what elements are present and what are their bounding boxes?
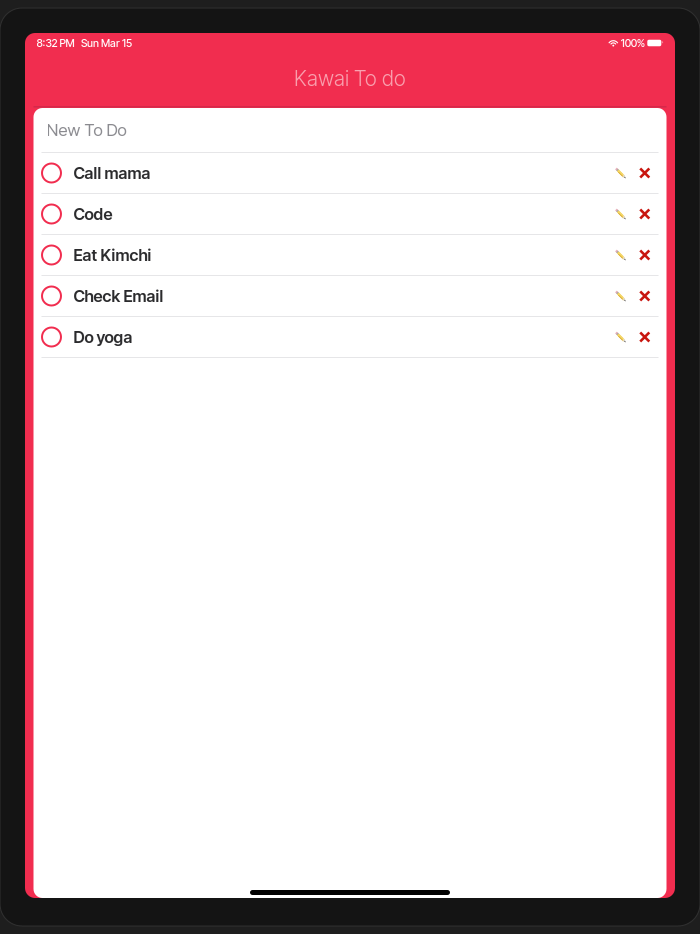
staticText: Kawai To do	[294, 66, 406, 91]
button[interactable]: Edit Call mama	[604, 153, 639, 193]
button[interactable]: Edit Do yoga	[604, 317, 639, 357]
button[interactable]: Complete Check Email	[33, 276, 73, 316]
staticText: Code	[73, 204, 112, 224]
button[interactable]: Delete Do yoga	[639, 317, 666, 357]
button[interactable]: Delete Code	[639, 194, 666, 234]
button[interactable]: Delete Check Email	[639, 276, 666, 316]
staticText: 8:32 PM	[36, 36, 74, 49]
button[interactable]: Edit Eat Kimchi	[604, 235, 639, 275]
button[interactable]: New To Do	[33, 108, 666, 152]
button[interactable]: Delete Eat Kimchi	[639, 235, 666, 275]
button[interactable]: Complete Code	[33, 194, 73, 234]
staticText: New To Do	[46, 120, 126, 140]
button[interactable]: Complete Eat Kimchi	[33, 235, 73, 275]
staticText: 100%	[621, 36, 645, 49]
staticText: Check Email	[73, 286, 163, 306]
staticText: Call mama	[73, 163, 150, 183]
staticText: Eat Kimchi	[73, 245, 151, 265]
button[interactable]: Delete Call mama	[639, 153, 666, 193]
staticText: Sun Mar 15	[81, 36, 132, 49]
button[interactable]: Complete Do yoga	[33, 317, 73, 357]
staticText: Do yoga	[73, 327, 132, 347]
button[interactable]: Edit Check Email	[604, 276, 639, 316]
button[interactable]: Complete Call mama	[33, 153, 73, 193]
button[interactable]: Edit Code	[604, 194, 639, 234]
